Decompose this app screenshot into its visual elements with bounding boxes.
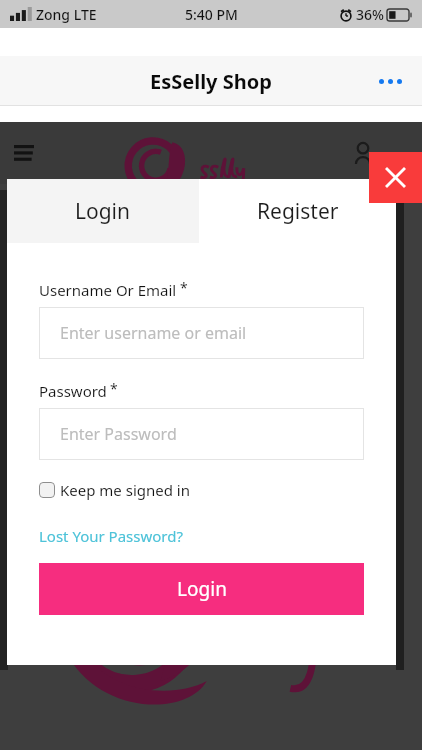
staticText: EsSelly Shop bbox=[150, 68, 272, 95]
staticText: Keep me signed in bbox=[60, 480, 190, 500]
staticText: Password bbox=[39, 381, 107, 401]
staticText: Lost Your Password? bbox=[39, 526, 183, 546]
button[interactable]: Login bbox=[7, 179, 199, 243]
button[interactable]: Lost Your Password? bbox=[39, 526, 183, 546]
button[interactable]: Enter username or email bbox=[39, 307, 364, 359]
button[interactable]: Login bbox=[39, 563, 364, 615]
staticText: * bbox=[180, 278, 188, 297]
staticText: Enter username or email bbox=[60, 322, 247, 344]
staticText: 36% bbox=[356, 5, 384, 24]
button[interactable]: Enter Password bbox=[39, 408, 364, 460]
staticText: Login bbox=[75, 197, 131, 226]
button[interactable]: Close bbox=[369, 152, 422, 203]
staticText: 5:40 PM bbox=[185, 5, 238, 24]
button[interactable]: Keep me signed in bbox=[39, 480, 190, 500]
button[interactable]: Account bbox=[352, 142, 374, 164]
button[interactable]: Register bbox=[199, 179, 396, 243]
button[interactable]: Menu bbox=[14, 143, 34, 163]
staticText: Login bbox=[177, 576, 227, 602]
staticText: Enter Password bbox=[60, 423, 177, 445]
button[interactable]: More options bbox=[373, 69, 408, 94]
staticText: Register bbox=[257, 197, 339, 226]
staticText: Zong LTE bbox=[36, 5, 97, 24]
staticText: Username Or Email bbox=[39, 280, 177, 300]
staticText: * bbox=[110, 379, 118, 398]
